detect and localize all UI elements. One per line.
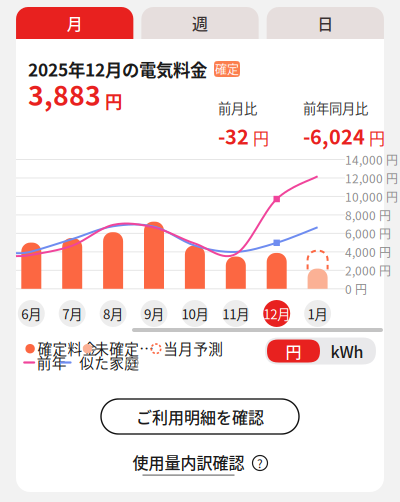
button[interactable]: kWh [320,339,374,362]
button[interactable]: 9月 [140,300,167,327]
button[interactable]: 6月 [18,300,45,327]
staticText: 8,000 円 [345,206,391,224]
staticText: 10,000 円 [345,188,398,205]
button[interactable]: ご利用明細を確認 [101,399,299,434]
staticText: 0 円 [345,280,367,297]
staticText: 週 [192,11,208,35]
staticText: 9月 [144,304,164,323]
staticText: 12,000 円 [345,169,398,187]
button[interactable]: 日 [267,7,384,39]
staticText: 6月 [21,304,41,323]
button[interactable]: 月 [16,7,133,39]
button[interactable]: 7月 [59,300,86,327]
staticText: 使用量内訳確認 [132,450,244,474]
button[interactable]: 円 [267,339,320,362]
staticText: 1月 [308,304,328,323]
staticText: 確定料金 [37,338,97,359]
button[interactable]: 1月 [304,300,331,327]
staticText: 2025年12月の電気料金 [28,56,207,82]
staticText: 未確定料金 [94,338,164,359]
staticText: 11月 [222,304,249,323]
staticText: 当月予測 [163,338,223,359]
staticText: 4,000 円 [345,243,391,261]
button[interactable]: 8月 [100,300,127,327]
staticText: 7月 [62,304,82,323]
staticText: 確定 [215,60,239,78]
staticText: 円 [285,339,301,363]
staticText: -6,024 [303,121,365,150]
staticText: 3,883 [28,75,101,113]
button[interactable]: 週 [141,7,259,39]
button[interactable]: 使用量内訳確認 [132,450,267,476]
staticText: 円 [369,126,385,149]
staticText: 12月 [263,304,290,323]
staticText: 日 [317,11,333,35]
staticText: 似た家庭 [79,352,139,373]
staticText: ? [129,354,135,371]
staticText: -32 [218,121,249,150]
staticText: 2,000 円 [345,262,391,279]
button[interactable]: 12月 [263,300,290,327]
staticText: 6,000 円 [345,225,391,242]
button[interactable]: 10月 [181,300,208,327]
staticText: 前月比 [218,98,257,117]
staticText: 月 [67,11,83,35]
button[interactable]: 11月 [222,300,249,327]
staticText: 8月 [103,304,123,323]
staticText: ご利用明細を確認 [136,405,264,428]
staticText: 前年同月比 [303,98,368,117]
staticText: 14,000 円 [345,151,398,168]
staticText: 前年 [37,352,67,373]
staticText: 円 [253,126,269,149]
staticText: 円 [105,88,122,113]
staticText: kWh [330,339,363,363]
staticText: 10月 [181,304,208,323]
staticText: ? [257,454,263,472]
